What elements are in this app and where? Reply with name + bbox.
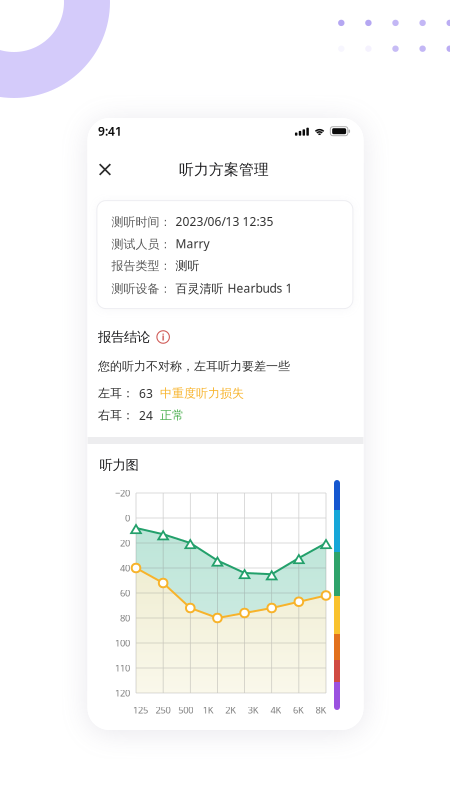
staticText: 8K [315,704,326,716]
staticText: 左耳： [98,386,134,401]
staticText: 110 [115,662,130,674]
staticText: 0 [125,512,130,524]
staticText: 125 [133,704,148,716]
staticText: 报告类型： [111,258,171,273]
staticText: 100 [115,637,130,649]
staticText: 中重度听力损失 [160,386,244,401]
staticText: 测听设备： [111,281,171,296]
staticText: 4K [270,704,281,716]
staticText: 右耳： [98,408,134,423]
staticText: 60 [120,587,130,599]
button[interactable]: Close [90,154,120,185]
staticText: i [162,331,165,343]
staticText: 20 [120,537,130,549]
staticText: 您的听力不对称，左耳听力要差一些 [98,359,290,374]
staticText: 3K [248,704,259,716]
staticText: 百灵清听 Hearbuds 1 [175,280,292,296]
staticText: 24 [139,407,153,423]
staticText: 2K [225,704,236,716]
staticText: Marry [175,236,209,251]
staticText: 听力方案管理 [179,160,269,178]
staticText: 正常 [160,408,184,423]
staticText: 报告结论 [98,329,150,345]
staticText: 63 [139,385,153,401]
staticText: 250 [156,704,171,716]
staticText: 测试人员： [111,237,171,251]
staticText: 40 [120,562,130,574]
staticText: 9:41 [98,123,122,139]
staticText: 测听 [175,258,199,273]
staticText: 6K [293,704,304,716]
staticText: 听力图 [99,457,138,473]
staticText: 1K [203,704,214,716]
staticText: 500 [178,704,193,716]
staticText: −20 [115,487,130,499]
staticText: 2023/06/13 12:35 [175,213,273,229]
staticText: 120 [115,687,130,699]
staticText: 测听时间： [111,214,171,229]
staticText: 80 [120,612,130,624]
